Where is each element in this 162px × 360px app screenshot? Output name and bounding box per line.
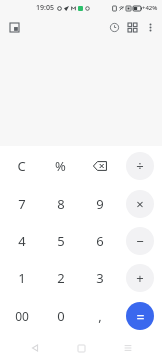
button[interactable]: History [105, 18, 123, 36]
staticText: 5 [57, 232, 65, 250]
button[interactable]: More options [141, 18, 159, 36]
button[interactable]: 9 [80, 187, 120, 221]
staticText: 4 [18, 232, 26, 250]
button[interactable]: Backspace [80, 149, 120, 183]
staticText: 7 [18, 195, 26, 213]
button[interactable]: % [41, 149, 80, 183]
staticText: +42% [142, 4, 158, 12]
staticText: + [136, 269, 144, 287]
button[interactable]: 7 [2, 187, 41, 221]
staticText: − [136, 232, 144, 250]
button[interactable]: + [120, 261, 160, 295]
button[interactable]: Back [23, 336, 47, 360]
button[interactable]: 3 [80, 261, 120, 295]
button[interactable]: C [2, 149, 41, 183]
staticText: C [17, 157, 26, 175]
staticText: 6 [96, 232, 104, 250]
button[interactable]: × [120, 187, 160, 221]
staticText: % [55, 157, 66, 175]
staticText: 1 [18, 269, 26, 287]
button[interactable]: 6 [80, 224, 120, 258]
staticText: 19:05 [36, 3, 54, 13]
button[interactable]: , [80, 299, 120, 333]
button[interactable]: − [120, 224, 160, 258]
staticText: 00 [15, 308, 29, 324]
staticText: × [136, 195, 144, 213]
button[interactable]: 2 [41, 261, 80, 295]
button[interactable]: 1 [2, 261, 41, 295]
button[interactable]: Scientific mode [123, 18, 141, 36]
staticText: = [136, 307, 145, 326]
button[interactable]: 5 [41, 224, 80, 258]
staticText: , [98, 307, 102, 325]
button[interactable]: = [120, 299, 160, 333]
staticText: 3 [96, 269, 104, 287]
button[interactable]: Recent apps [116, 336, 140, 360]
button[interactable]: Picture in picture [6, 19, 22, 35]
staticText: 0 [57, 307, 65, 325]
button[interactable]: Home [69, 336, 93, 360]
button[interactable]: 4 [2, 224, 41, 258]
button[interactable]: ÷ [120, 149, 160, 183]
button[interactable]: 8 [41, 187, 80, 221]
staticText: 9 [96, 195, 104, 213]
button[interactable]: 00 [2, 299, 41, 333]
staticText: 2 [57, 269, 65, 287]
staticText: ÷ [136, 157, 144, 175]
staticText: 8 [57, 195, 65, 213]
button[interactable]: 0 [41, 299, 80, 333]
